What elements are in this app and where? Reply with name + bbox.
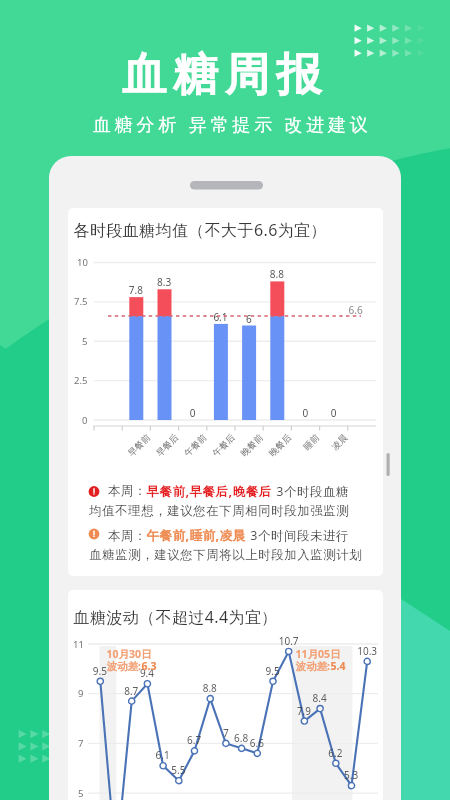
button[interactable] [0,0,450,800]
